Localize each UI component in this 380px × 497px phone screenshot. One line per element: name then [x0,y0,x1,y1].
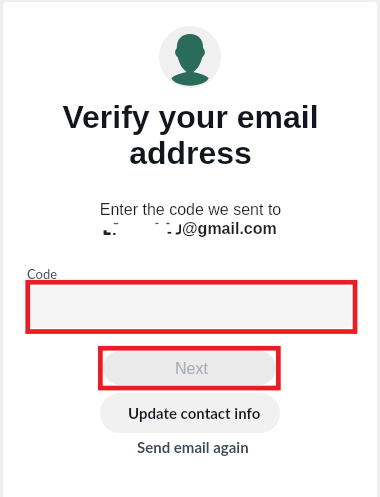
staticText: Next [175,360,208,378]
staticText: Verify your email address [33,99,348,171]
staticText: Code [27,266,58,282]
button[interactable]: Update contact info [100,393,280,433]
staticText: Send email again [137,438,249,456]
staticText: @gmail.com [182,220,277,238]
button[interactable]: Next [103,351,276,385]
staticText: Enter the code we sent to [4,201,377,219]
button[interactable]: Send email again [100,436,280,458]
staticText: Update contact info [128,404,261,422]
